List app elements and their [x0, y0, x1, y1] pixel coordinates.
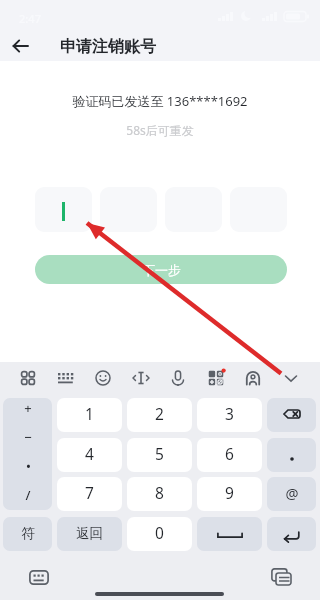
- button[interactable]: Backspace: [267, 398, 316, 432]
- button[interactable]: Space: [197, 517, 262, 551]
- button[interactable]: Assistant: [239, 364, 267, 392]
- staticText: 验证码已发送至 136****1692: [0, 92, 320, 110]
- staticText: 3: [225, 403, 234, 424]
- button[interactable]: Emoji: [89, 364, 117, 392]
- button[interactable]: Enter: [267, 517, 316, 551]
- staticText: 下一步: [142, 262, 181, 278]
- button[interactable]: Symbols: [3, 398, 52, 510]
- button[interactable]: 8: [127, 477, 192, 511]
- button[interactable]: Keyboard: [52, 364, 80, 392]
- staticText: 58s后可重发: [0, 122, 320, 138]
- staticText: /: [25, 486, 31, 504]
- staticText: 5: [155, 443, 164, 464]
- button[interactable]: Scan: [202, 364, 230, 392]
- button[interactable]: 1: [57, 398, 122, 432]
- button[interactable]: Switch keyboard: [24, 564, 54, 590]
- button[interactable]: 5: [127, 438, 192, 472]
- staticText: •: [26, 457, 31, 475]
- staticText: @: [285, 483, 299, 503]
- staticText: 0: [155, 522, 164, 543]
- button[interactable]: Back: [4, 29, 37, 62]
- staticText: 8: [155, 482, 164, 503]
- button[interactable]: 3: [197, 398, 262, 432]
- staticText: +: [24, 399, 32, 417]
- button[interactable]: 9: [197, 477, 262, 511]
- button[interactable]: 返回: [57, 517, 122, 551]
- button[interactable]: @: [267, 477, 316, 511]
- staticText: 6: [225, 443, 234, 464]
- button[interactable]: [100, 187, 157, 232]
- staticText: 2: [155, 403, 164, 424]
- staticText: 符: [21, 525, 35, 542]
- staticText: 返回: [76, 525, 103, 542]
- staticText: 9: [225, 482, 234, 503]
- button[interactable]: 下一步: [35, 255, 287, 284]
- button[interactable]: 2: [127, 398, 192, 432]
- staticText: 申请注销账号: [60, 37, 156, 57]
- button[interactable]: [35, 187, 92, 232]
- button[interactable]: Text cursor: [127, 364, 155, 392]
- button[interactable]: .: [267, 438, 316, 472]
- button[interactable]: Recent apps: [266, 564, 296, 590]
- staticText: 4: [85, 443, 94, 464]
- button[interactable]: Apps: [14, 364, 42, 392]
- button[interactable]: 7: [57, 477, 122, 511]
- staticText: 1: [85, 403, 94, 424]
- staticText: 7: [85, 482, 94, 503]
- button[interactable]: 符: [3, 517, 52, 551]
- button[interactable]: Voice input: [164, 364, 192, 392]
- button[interactable]: 4: [57, 438, 122, 472]
- button[interactable]: Hide keyboard: [277, 364, 305, 392]
- button[interactable]: 0: [127, 517, 192, 551]
- button[interactable]: 6: [197, 438, 262, 472]
- staticText: −: [24, 428, 32, 446]
